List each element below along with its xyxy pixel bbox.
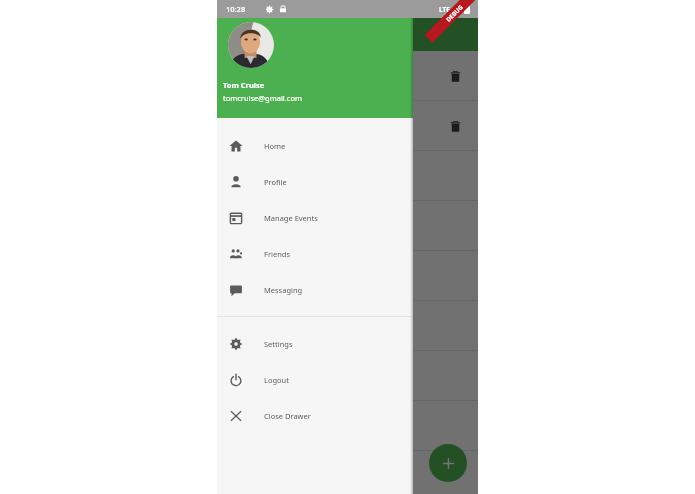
staticText: Profile (264, 177, 287, 187)
button[interactable]: Delete (217, 101, 478, 151)
button[interactable]: Add (429, 444, 467, 482)
staticText: Manage Events (264, 213, 318, 223)
button[interactable]: Messaging (217, 272, 413, 308)
staticText: Tom Cruise (223, 80, 265, 90)
button[interactable] (217, 351, 478, 401)
button[interactable]: Manage Events (217, 200, 413, 236)
staticText: Logout (264, 375, 289, 385)
staticText: Close Drawer (264, 411, 311, 421)
button[interactable]: Delete (217, 51, 478, 101)
button[interactable] (217, 301, 478, 351)
button[interactable] (217, 151, 478, 201)
button[interactable]: Delete (446, 67, 464, 85)
button[interactable]: Profile (217, 164, 413, 200)
button[interactable]: Home (217, 128, 413, 164)
staticText: LTE (439, 5, 450, 14)
button[interactable]: Settings (217, 326, 413, 362)
staticText: Messaging (264, 285, 303, 295)
button[interactable] (217, 451, 478, 494)
button[interactable] (217, 201, 478, 251)
staticText: tomcruise@gmail.com (223, 93, 302, 103)
button[interactable] (217, 401, 478, 451)
button[interactable]: Delete (446, 117, 464, 135)
button[interactable]: Logout (217, 362, 413, 398)
staticText: Home (264, 141, 286, 151)
button[interactable] (217, 251, 478, 301)
button[interactable]: Close Drawer (217, 398, 413, 434)
staticText: 10:28 (226, 4, 246, 14)
staticText: Settings (264, 339, 293, 349)
staticText: Friends (264, 249, 290, 259)
button[interactable]: Friends (217, 236, 413, 272)
staticText: DEBUG (444, 3, 465, 24)
